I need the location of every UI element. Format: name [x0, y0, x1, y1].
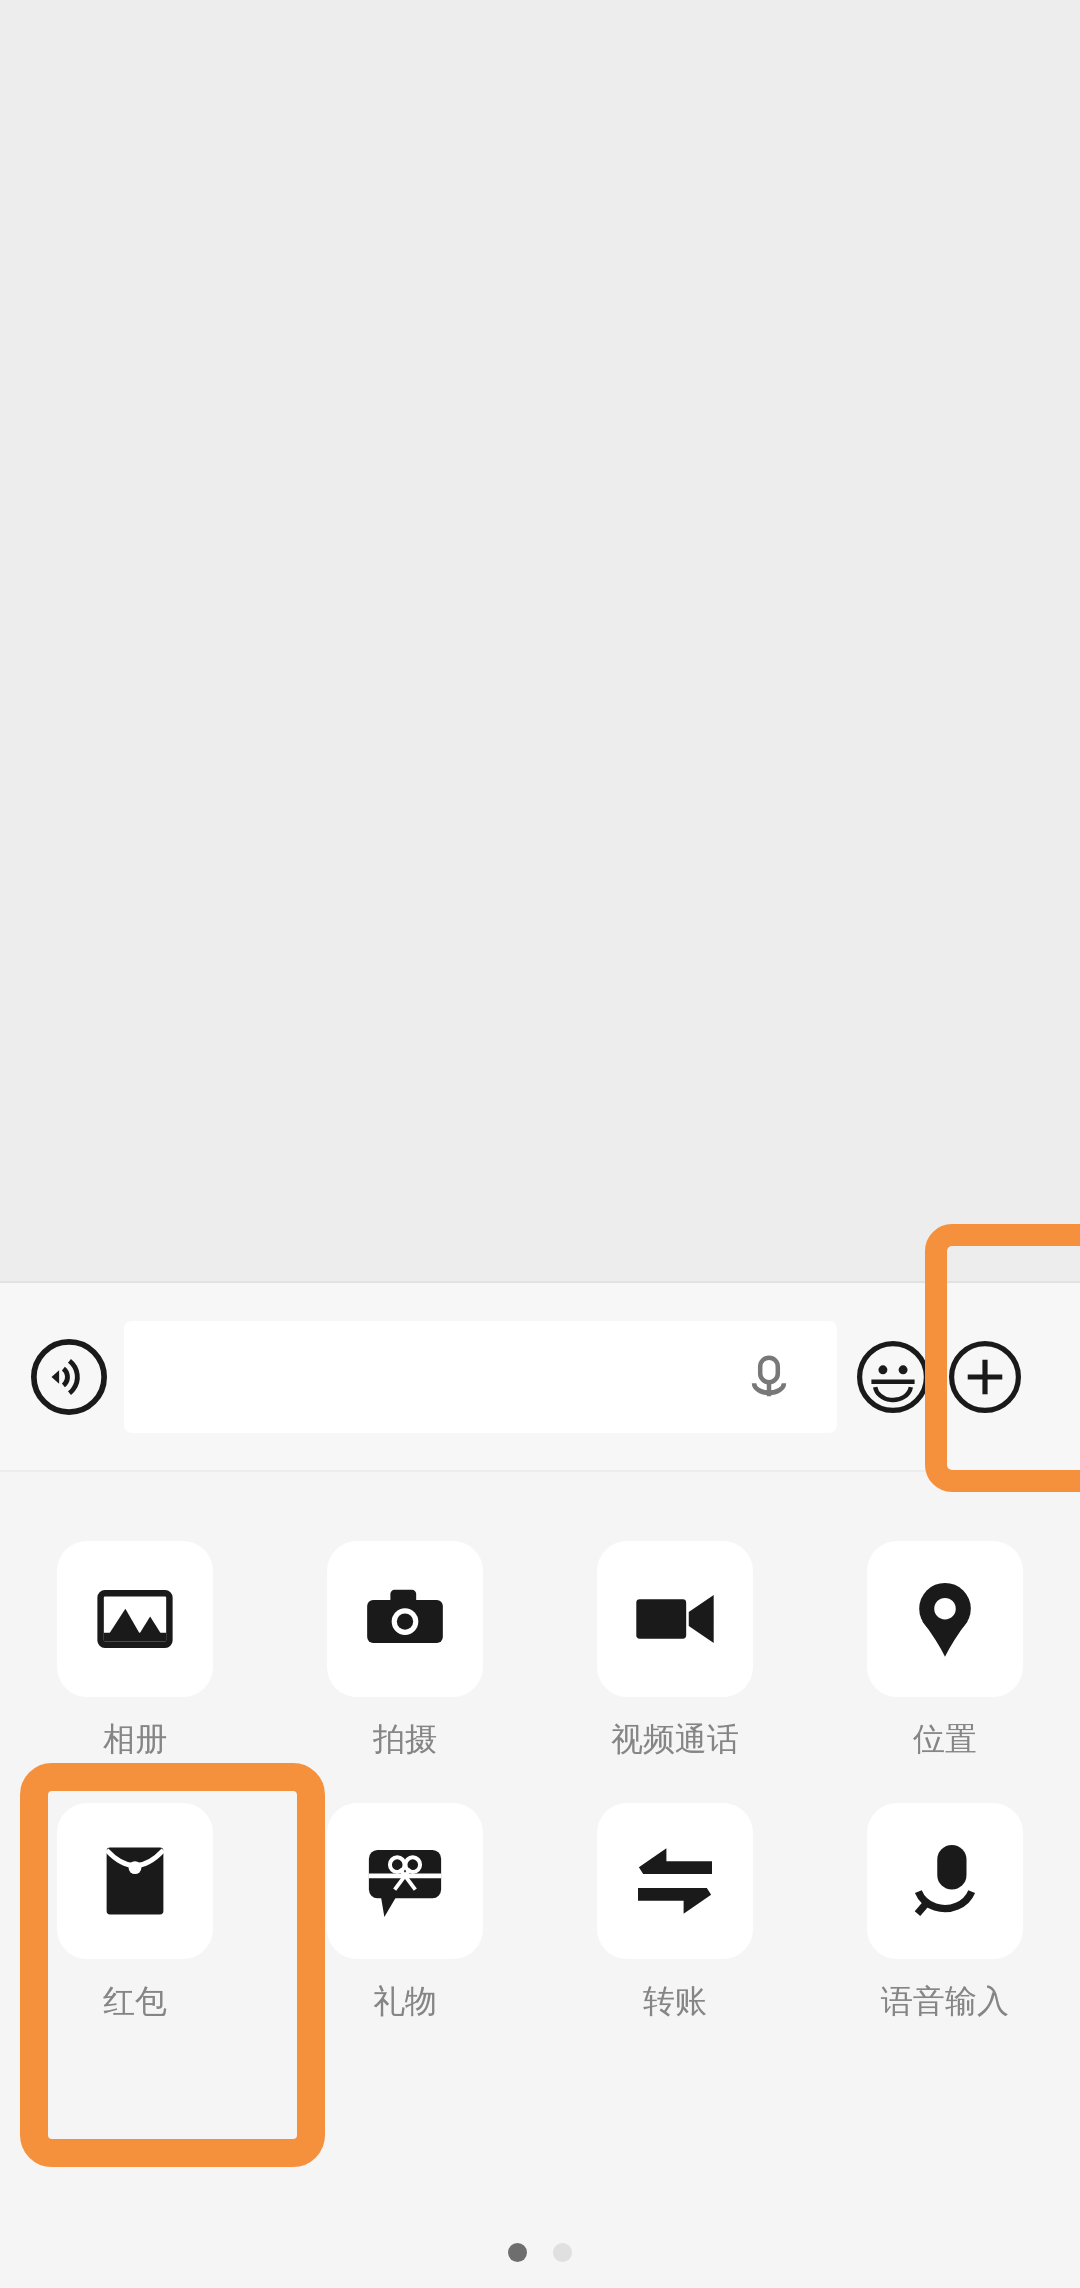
- button[interactable]: 相册: [0, 1541, 270, 1759]
- button[interactable]: 语音输入: [810, 1803, 1080, 2021]
- button[interactable]: Voice message: [22, 1330, 116, 1424]
- button[interactable]: 礼物: [270, 1803, 540, 2021]
- button[interactable]: Emoji: [847, 1331, 939, 1423]
- button[interactable]: More: [939, 1331, 1031, 1423]
- button[interactable]: 位置: [810, 1541, 1080, 1759]
- staticText: 红包: [103, 1981, 167, 2021]
- button[interactable]: 转账: [540, 1803, 810, 2021]
- staticText: 拍摄: [373, 1719, 437, 1759]
- button[interactable]: 视频通话: [540, 1541, 810, 1759]
- staticText: 转账: [643, 1981, 707, 2021]
- button[interactable]: [124, 1321, 837, 1433]
- staticText: 视频通话: [611, 1719, 739, 1759]
- staticText: 位置: [913, 1719, 977, 1759]
- staticText: 语音输入: [881, 1981, 1009, 2021]
- button[interactable]: 红包: [0, 1803, 270, 2021]
- button[interactable]: 拍摄: [270, 1541, 540, 1759]
- staticText: 相册: [103, 1719, 167, 1759]
- staticText: 礼物: [373, 1981, 437, 2021]
